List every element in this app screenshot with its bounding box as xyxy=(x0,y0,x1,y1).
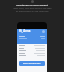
staticText: Book appointment xyxy=(23,62,41,65)
button[interactable] xyxy=(19,52,45,55)
staticText: Book visits, chat with doctors and keep … xyxy=(13,7,52,13)
button[interactable] xyxy=(19,44,45,47)
button[interactable] xyxy=(19,47,45,50)
button[interactable]: Profile xyxy=(42,30,45,33)
button[interactable] xyxy=(19,54,45,57)
button[interactable]: App logo xyxy=(31,0,34,3)
button[interactable]: Book appointment xyxy=(19,61,45,66)
button[interactable] xyxy=(19,49,45,52)
staticText: Hi, Anna xyxy=(19,29,31,33)
staticText: Healthcare in your pocket xyxy=(16,3,48,6)
